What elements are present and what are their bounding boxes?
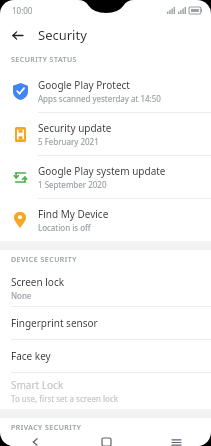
staticText: 10:00 bbox=[12, 5, 33, 16]
button[interactable]: Screen lock bbox=[0, 270, 211, 306]
staticText: Location is off bbox=[38, 222, 91, 233]
button[interactable]: Fingerprint sensor bbox=[0, 307, 211, 339]
staticText: Fingerprint sensor bbox=[11, 316, 98, 330]
button[interactable]: Smart Lock bbox=[0, 373, 211, 409]
staticText: Face key bbox=[11, 349, 51, 363]
staticText: 5 February 2021 bbox=[38, 136, 99, 147]
button[interactable]: Recent apps bbox=[141, 438, 211, 446]
button[interactable]: Security update bbox=[0, 113, 211, 155]
button[interactable]: Back bbox=[0, 438, 71, 446]
button[interactable]: Home bbox=[71, 438, 141, 446]
staticText: To use, first set a screen lock bbox=[11, 393, 118, 404]
staticText: Apps scanned yesterday at 14:50 bbox=[38, 93, 161, 104]
button[interactable]: Google Play Protect bbox=[0, 70, 211, 112]
staticText: Smart Lock bbox=[11, 378, 64, 392]
button[interactable]: Google Play system update bbox=[0, 156, 211, 198]
button[interactable]: Find My Device bbox=[0, 199, 211, 241]
staticText: Security bbox=[38, 26, 87, 44]
staticText: Screen lock bbox=[11, 275, 65, 289]
staticText: Find My Device bbox=[38, 207, 109, 221]
button[interactable]: Face key bbox=[0, 340, 211, 372]
staticText: Google Play Protect bbox=[38, 78, 130, 92]
staticText: PRIVACY SECURITY bbox=[11, 423, 82, 433]
staticText: 1 September 2020 bbox=[38, 179, 107, 190]
staticText: None bbox=[11, 290, 32, 301]
staticText: Google Play system update bbox=[38, 164, 166, 178]
staticText: DEVICE SECURITY bbox=[11, 255, 77, 265]
staticText: SECURITY STATUS bbox=[11, 55, 77, 65]
staticText: Security update bbox=[38, 121, 112, 135]
button[interactable]: Back bbox=[6, 24, 28, 46]
